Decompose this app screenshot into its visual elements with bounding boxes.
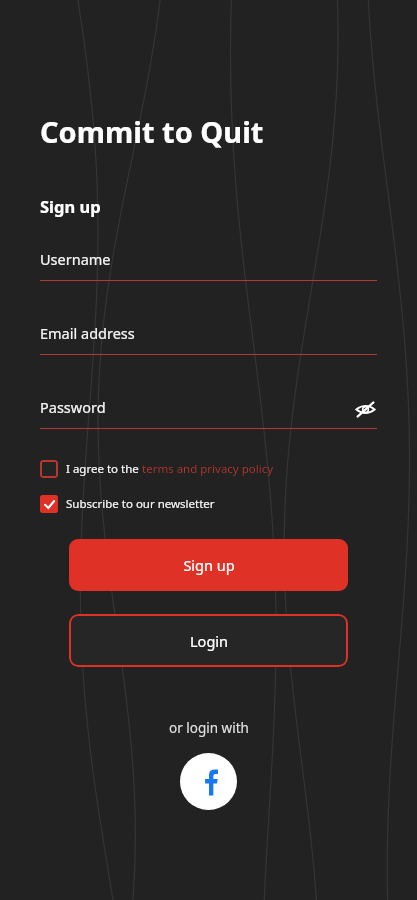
button[interactable]: Subscribe to our newsletter: [40, 495, 215, 513]
button[interactable]: I agree to the: [40, 460, 274, 478]
button[interactable]: Password: [40, 397, 377, 429]
button[interactable]: Sign up: [69, 539, 348, 591]
button[interactable]: Login with Facebook: [180, 753, 237, 810]
button[interactable]: Email address: [40, 323, 377, 355]
staticText: Subscribe to our newsletter: [66, 496, 215, 512]
button[interactable]: terms and privacy policy: [142, 461, 274, 477]
staticText: Commit to Quit: [40, 112, 264, 151]
staticText: Password: [40, 397, 106, 417]
staticText: Email address: [40, 323, 135, 343]
staticText: Sign up: [40, 195, 101, 217]
button[interactable]: Show password: [353, 397, 377, 421]
staticText: or login with: [169, 719, 249, 737]
staticText: Sign up: [183, 555, 235, 575]
staticText: Username: [40, 249, 111, 269]
button[interactable]: Username: [40, 249, 377, 281]
button[interactable]: Login: [69, 614, 348, 667]
staticText: I agree to the: [66, 461, 142, 477]
staticText: Login: [190, 631, 228, 651]
